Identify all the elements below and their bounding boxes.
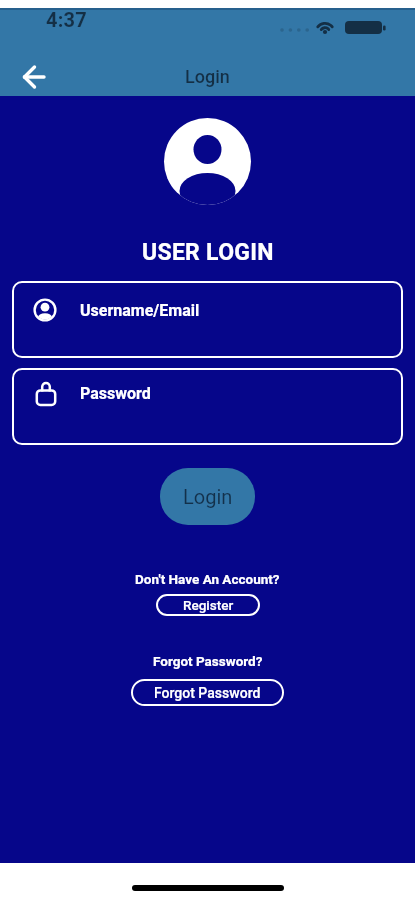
staticText: Login [183,485,233,508]
button[interactable]: Login [160,468,255,525]
staticText: Register [183,597,234,613]
button[interactable]: Register [156,594,260,616]
button[interactable] [14,58,54,96]
button[interactable]: Forgot Password [131,679,284,706]
staticText: Forgot Password [154,685,261,701]
staticText: Don't Have An Account? [135,571,280,587]
staticText: Forgot Password? [153,653,263,669]
button[interactable]: Password [12,368,403,445]
staticText: 4:37 [46,8,87,31]
staticText: Username/Email [80,301,200,320]
staticText: Login [185,66,230,87]
staticText: Password [80,384,151,403]
staticText: USER LOGIN [142,239,274,266]
button[interactable]: Username/Email [12,281,403,358]
